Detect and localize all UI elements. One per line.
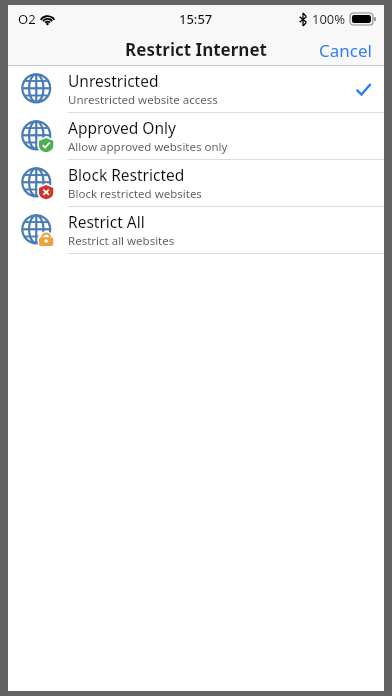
staticText: Block restricted websites bbox=[68, 186, 202, 202]
button[interactable]: Cancel bbox=[307, 33, 384, 66]
staticText: Cancel bbox=[319, 39, 372, 60]
staticText: Block Restricted bbox=[68, 164, 185, 185]
staticText: Allow approved websites only bbox=[68, 139, 228, 155]
staticText: O2 bbox=[18, 10, 36, 28]
staticText: 100% bbox=[312, 10, 346, 28]
button[interactable]: Approved Only bbox=[8, 113, 384, 159]
button[interactable]: Restrict All bbox=[8, 207, 384, 253]
staticText: 15:57 bbox=[179, 10, 213, 28]
staticText: Approved Only bbox=[68, 117, 176, 138]
staticText: Unrestricted website access bbox=[68, 92, 218, 108]
staticText: Unrestricted bbox=[68, 70, 159, 91]
staticText: Restrict All bbox=[68, 211, 145, 232]
button[interactable]: Block Restricted bbox=[8, 160, 384, 206]
staticText: Restrict Internet bbox=[125, 38, 267, 61]
staticText: Restrict all websites bbox=[68, 233, 175, 249]
button[interactable]: Unrestricted bbox=[8, 66, 384, 112]
